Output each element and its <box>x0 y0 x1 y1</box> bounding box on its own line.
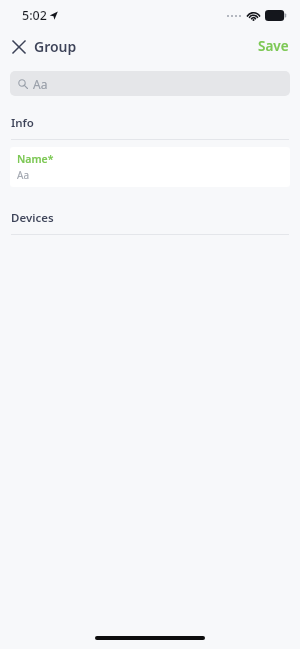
staticText: Devices <box>11 210 54 226</box>
button[interactable]: Save <box>247 31 300 61</box>
staticText: Group <box>34 37 77 56</box>
staticText: Save <box>258 37 289 55</box>
staticText: Name* <box>17 152 54 166</box>
staticText: Aa <box>17 168 29 182</box>
button[interactable]: Name* <box>10 147 290 187</box>
staticText: 5:02 <box>22 7 47 24</box>
staticText: Aa <box>33 76 48 92</box>
button[interactable]: Close <box>0 32 85 61</box>
button[interactable]: Search <box>10 71 290 96</box>
staticText: Info <box>11 115 34 131</box>
other: Search <box>18 79 28 89</box>
other: Close <box>10 38 27 55</box>
